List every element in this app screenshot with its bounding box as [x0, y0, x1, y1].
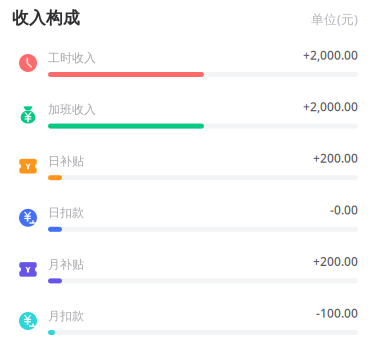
button[interactable]: 月补贴: [0, 0, 370, 347]
staticText: +200.00: [313, 150, 358, 166]
staticText: 加班收入: [48, 102, 96, 117]
button[interactable]: 加班收入: [0, 0, 370, 347]
staticText: 单位(元): [311, 10, 358, 28]
staticText: -0.00: [330, 202, 358, 218]
button[interactable]: 日补贴: [0, 0, 370, 347]
staticText: +200.00: [313, 253, 358, 269]
staticText: 工时收入: [48, 50, 96, 65]
staticText: 月扣款: [48, 308, 84, 323]
staticText: 日扣款: [48, 205, 84, 220]
staticText: -100.00: [316, 305, 358, 321]
staticText: +2,000.00: [303, 47, 358, 63]
staticText: 月补贴: [48, 257, 84, 272]
staticText: 日补贴: [48, 154, 84, 169]
button[interactable]: 工时收入: [0, 0, 370, 347]
staticText: +2,000.00: [303, 98, 358, 115]
button[interactable]: 日扣款: [0, 0, 370, 347]
button[interactable]: 月扣款: [0, 0, 370, 347]
staticText: 收入构成: [12, 7, 80, 28]
